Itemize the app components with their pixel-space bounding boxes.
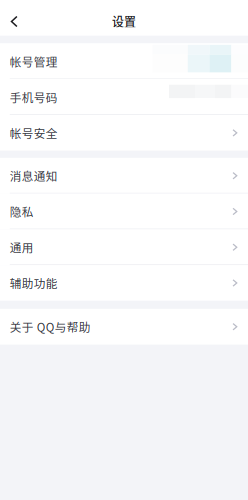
staticText: 关于 QQ与帮助 xyxy=(10,318,91,335)
button[interactable]: 返回 xyxy=(0,16,30,27)
button[interactable]: 手机号码 xyxy=(0,79,248,115)
button[interactable]: 通用 xyxy=(0,229,248,265)
button[interactable]: 消息通知 xyxy=(0,158,248,194)
button[interactable]: 隐私 xyxy=(0,194,248,229)
button[interactable]: 关于 QQ与帮助 xyxy=(0,309,248,345)
button[interactable]: 帐号管理 xyxy=(0,43,248,79)
staticText: 辅助功能 xyxy=(10,275,58,291)
button[interactable]: 辅助功能 xyxy=(0,265,248,301)
staticText: 消息通知 xyxy=(10,167,58,184)
staticText: 手机号码 xyxy=(10,89,58,105)
staticText: 通用 xyxy=(10,239,34,256)
staticText: 帐号安全 xyxy=(10,124,58,141)
staticText: 设置 xyxy=(112,13,136,30)
staticText: 帐号管理 xyxy=(10,53,58,70)
staticText: 隐私 xyxy=(10,203,34,220)
button[interactable]: 帐号安全 xyxy=(0,115,248,151)
